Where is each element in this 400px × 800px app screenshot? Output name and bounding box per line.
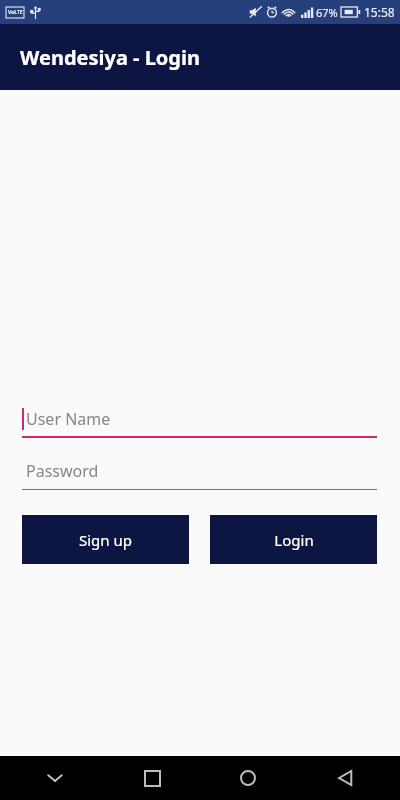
staticText: 15:58 <box>364 4 395 20</box>
button[interactable]: Hide keyboard <box>14 756 96 800</box>
button[interactable]: Sign up <box>22 515 189 564</box>
staticText: User Name <box>26 408 111 430</box>
button[interactable]: Login <box>210 515 377 564</box>
button[interactable]: Home <box>207 756 289 800</box>
staticText: Login <box>274 530 314 550</box>
staticText: 67% <box>316 5 338 20</box>
button[interactable]: Back <box>304 756 386 800</box>
button[interactable]: User Name <box>22 400 377 438</box>
button[interactable]: Recent apps <box>111 756 193 800</box>
staticText: Sign up <box>79 530 132 550</box>
staticText: Password <box>26 460 99 482</box>
button[interactable]: Password <box>22 452 377 490</box>
staticText: Wendesiya - Login <box>20 44 200 71</box>
staticText: VoLTE <box>8 9 23 16</box>
